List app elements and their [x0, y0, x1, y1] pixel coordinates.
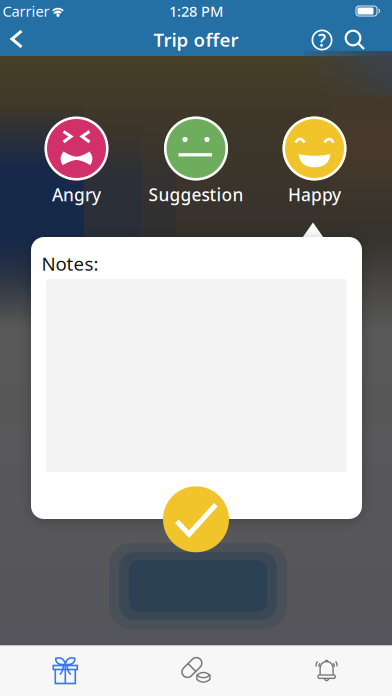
button[interactable]: ?: [306, 20, 338, 60]
staticText: Happy: [288, 183, 341, 206]
staticText: Carrier: [2, 1, 49, 21]
staticText: Notes:: [41, 251, 98, 276]
button[interactable]: [131, 645, 261, 696]
button[interactable]: [163, 486, 229, 552]
staticText: Trip offer: [153, 27, 238, 52]
button[interactable]: Angry: [16, 111, 136, 221]
staticText: 1:28 PM: [169, 1, 223, 21]
button[interactable]: [338, 20, 372, 60]
staticText: Suggestion: [148, 183, 243, 206]
staticText: ?: [318, 28, 326, 51]
button[interactable]: [261, 645, 392, 696]
button[interactable]: Happy: [254, 111, 374, 221]
staticText: Angry: [52, 183, 101, 206]
button[interactable]: [0, 19, 44, 59]
button[interactable]: Suggestion: [136, 111, 256, 221]
button[interactable]: [0, 645, 131, 696]
